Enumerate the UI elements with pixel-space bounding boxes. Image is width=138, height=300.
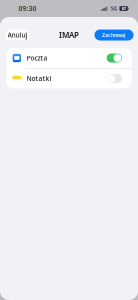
staticText: Poczta <box>26 54 47 62</box>
button[interactable]: Poczta <box>6 48 132 68</box>
staticText: Notatki <box>26 74 51 83</box>
button[interactable]: Zachowaj <box>94 29 133 40</box>
button[interactable]: Notatki <box>6 68 132 88</box>
staticText: 5G <box>110 5 117 12</box>
staticText: IMAP <box>59 30 79 40</box>
staticText: 87 <box>122 6 126 11</box>
staticText: 09:30 <box>18 4 36 13</box>
staticText: Zachowaj <box>102 31 126 39</box>
button[interactable]: Anuluj <box>5 29 30 40</box>
staticText: Anuluj <box>7 31 27 39</box>
